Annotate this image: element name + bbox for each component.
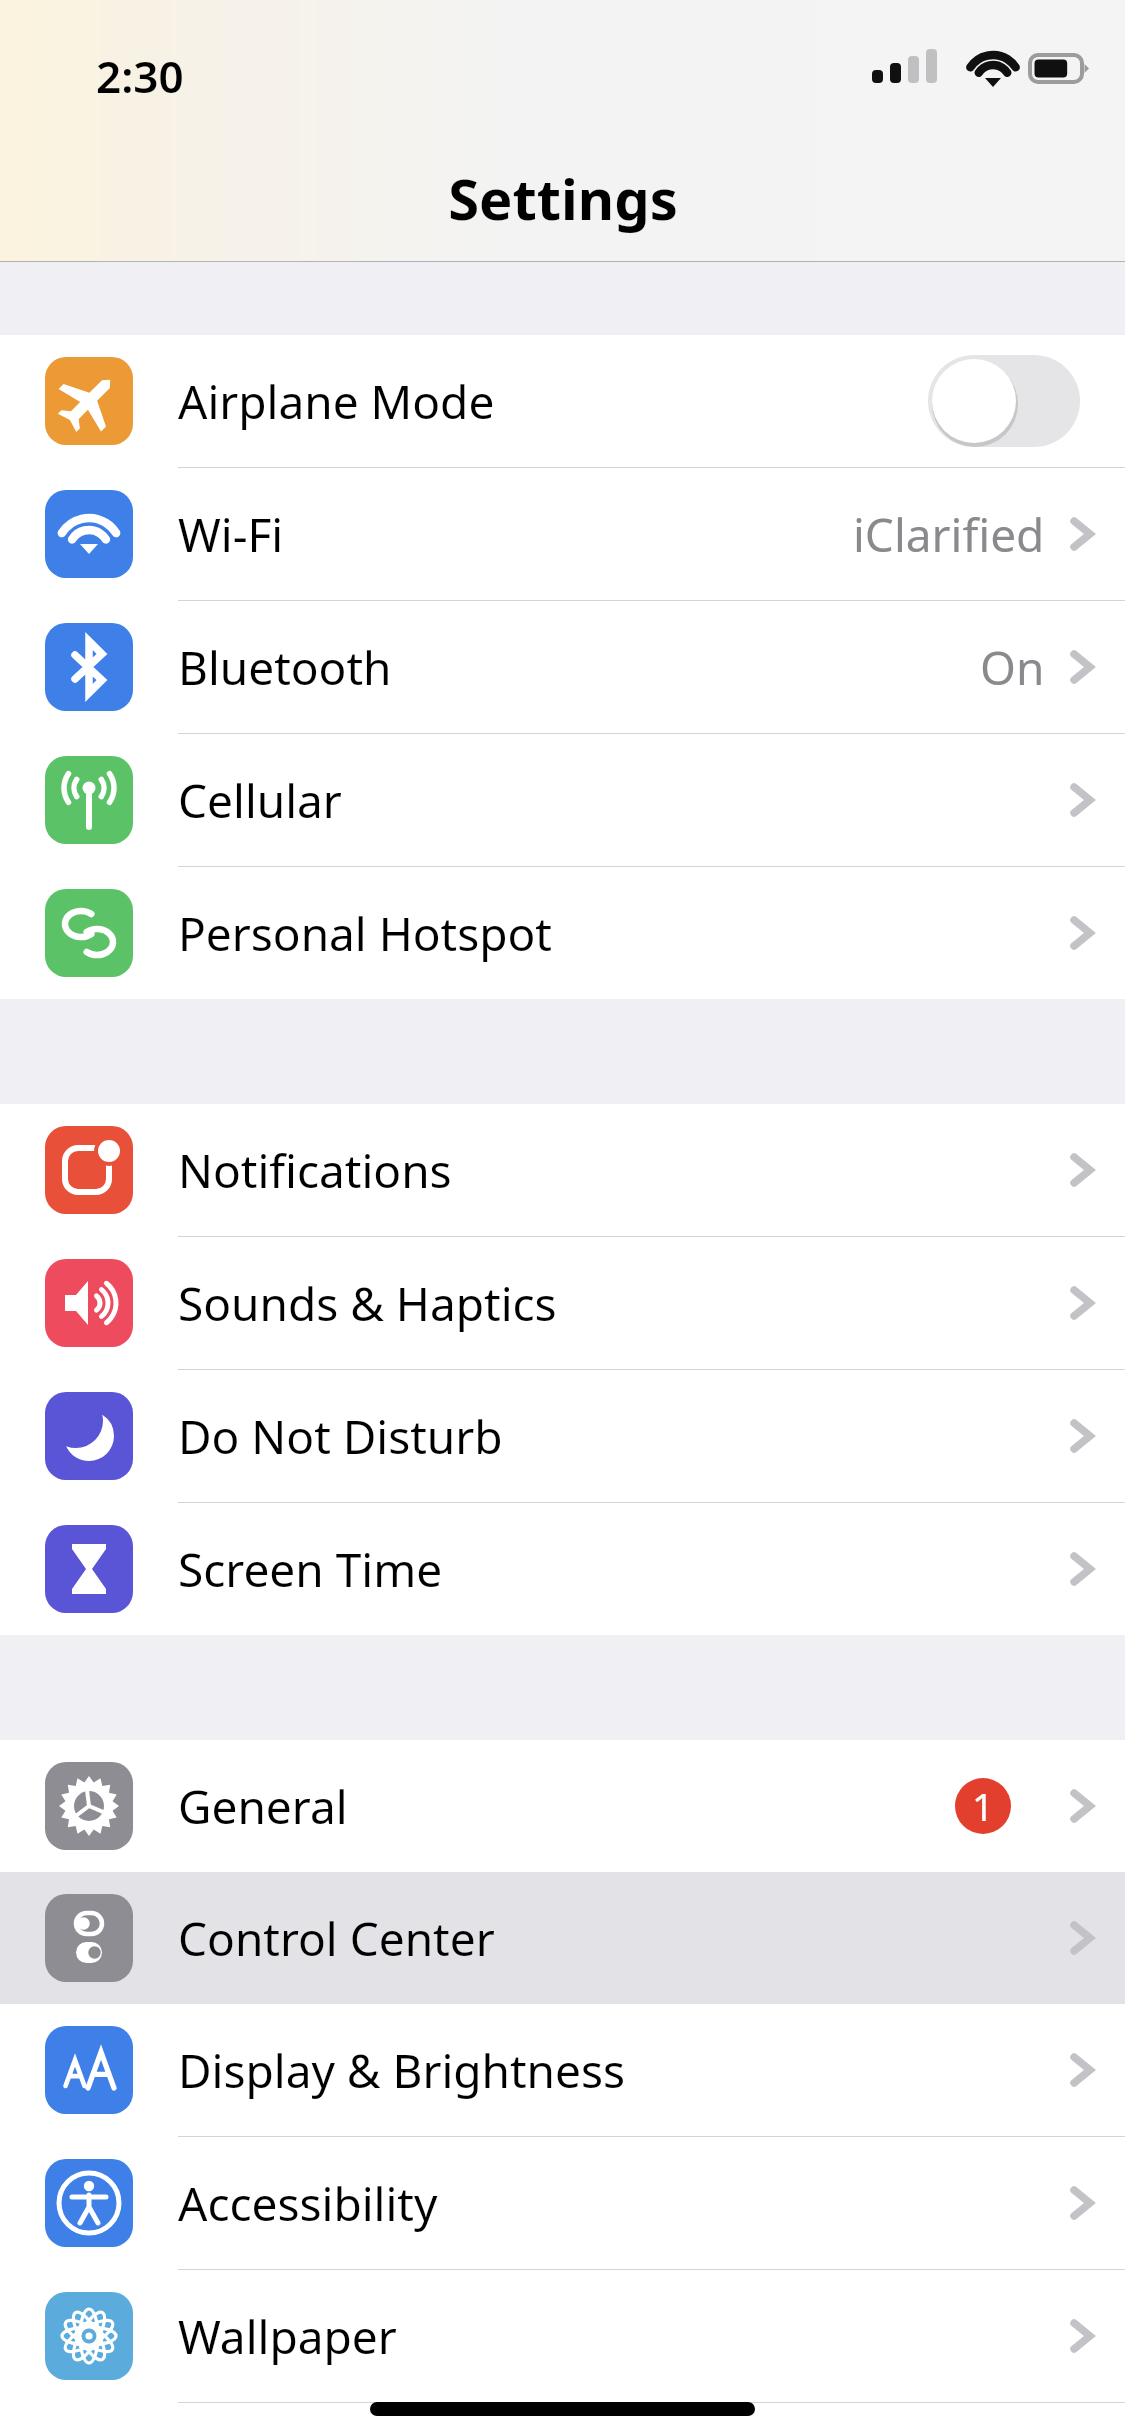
button[interactable]: Display & Brightness	[0, 2004, 1125, 2136]
staticText: On	[980, 636, 1045, 699]
button[interactable]: Control Center	[0, 1872, 1125, 2004]
staticText: Wi-Fi	[178, 503, 853, 566]
staticText: General	[178, 1775, 955, 1838]
staticText: Sounds & Haptics	[178, 1272, 1063, 1335]
button[interactable]: General	[0, 1740, 1125, 1872]
button[interactable]: Notifications	[0, 1104, 1125, 1236]
staticText: 1	[972, 1780, 994, 1832]
button[interactable]: Cellular	[0, 734, 1125, 866]
button[interactable]: Accessibility	[0, 2137, 1125, 2269]
staticText: iClarified	[853, 503, 1045, 566]
staticText: Screen Time	[178, 1538, 1063, 1601]
staticText: Display & Brightness	[178, 2039, 1063, 2102]
button[interactable]: Do Not Disturb	[0, 1370, 1125, 1502]
staticText: Airplane Mode	[178, 370, 928, 433]
staticText: Wallpaper	[178, 2305, 1063, 2368]
staticText: Notifications	[178, 1139, 1063, 1202]
staticText: Settings	[448, 160, 678, 236]
staticText: 2:30	[96, 46, 184, 106]
button[interactable]: Sounds & Haptics	[0, 1237, 1125, 1369]
staticText: Do Not Disturb	[178, 1405, 1063, 1468]
button[interactable]: Wi-Fi	[0, 468, 1125, 600]
staticText: Cellular	[178, 769, 1063, 832]
button[interactable]: Wallpaper	[0, 2270, 1125, 2402]
button[interactable]: Airplane Mode toggle	[928, 355, 1080, 447]
staticText: Personal Hotspot	[178, 902, 1063, 965]
button[interactable]: Airplane Mode	[0, 335, 1125, 467]
button[interactable]: Bluetooth	[0, 601, 1125, 733]
staticText: Accessibility	[178, 2172, 1063, 2235]
staticText: Control Center	[178, 1907, 1063, 1970]
button[interactable]: Screen Time	[0, 1503, 1125, 1635]
button[interactable]: Personal Hotspot	[0, 867, 1125, 999]
staticText: Bluetooth	[178, 636, 980, 699]
